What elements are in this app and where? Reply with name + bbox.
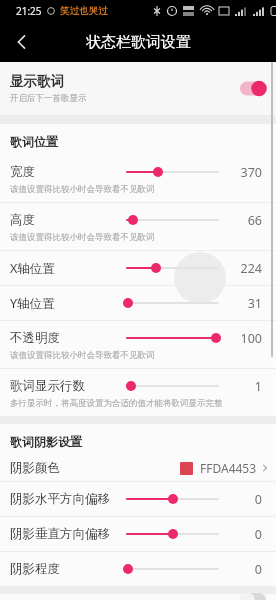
button[interactable]: 不透明度 (0, 321, 276, 368)
staticText: 笑过也哭过 (60, 5, 108, 17)
staticText: 21:25 (16, 4, 42, 18)
staticText: 该值设置得比较小时会导致看不见歌词 (10, 184, 155, 195)
staticText: X轴位置 (10, 260, 55, 277)
button[interactable]: 宽度 (0, 155, 276, 202)
button[interactable]: 阴影水平方向偏移 (0, 482, 276, 516)
staticText: 高度 (10, 212, 35, 228)
staticText: 阴影颜色 (10, 460, 60, 476)
button[interactable]: X轴位置 (0, 251, 276, 285)
staticText: 1 (254, 378, 262, 395)
staticText: 0 (254, 561, 262, 578)
staticText: 该值设置得比较小时会导致看不见歌词 (10, 232, 155, 243)
button[interactable]: Y轴位置 (0, 286, 276, 320)
staticText: 开启后下一首歌显示 (10, 93, 87, 104)
staticText: 歌词位置 (10, 134, 58, 149)
staticText: 阴影水平方向偏移 (10, 491, 110, 507)
button[interactable]: 阴影颜色 (0, 455, 276, 481)
staticText: 31 (247, 295, 262, 312)
staticText: 显示歌词 (10, 73, 64, 90)
staticText: Y轴位置 (10, 295, 55, 312)
button[interactable]: 显示歌词 (0, 62, 276, 115)
button[interactable]: 阴影程度 (0, 552, 276, 586)
staticText: 宽度 (10, 164, 35, 180)
staticText: 不透明度 (10, 330, 60, 346)
button[interactable]: 高度 (0, 203, 276, 250)
staticText: 0 (254, 491, 262, 508)
staticText: 歌词显示行数 (10, 378, 85, 394)
staticText: FFDA4453 (200, 460, 257, 476)
staticText: 阴影程度 (10, 561, 60, 577)
button[interactable]: 阴影垂直方向偏移 (0, 517, 276, 551)
staticText: 歌词阴影设置 (10, 434, 82, 449)
button[interactable]: 歌词显示行数 (0, 369, 276, 416)
staticText: 0 (254, 526, 262, 543)
staticText: 状态栏歌词设置 (86, 33, 191, 52)
staticText: 66 (247, 212, 262, 229)
staticText: 阴影垂直方向偏移 (10, 526, 110, 542)
staticText: 370 (240, 164, 262, 181)
staticText: 多行显示时，将高度设置为合适的值才能将歌词显示完整 (10, 398, 223, 409)
staticText: 224 (240, 260, 262, 277)
staticText: 该值设置得比较小时会导致看不见歌词 (10, 350, 155, 361)
button[interactable]: Back (4, 24, 40, 60)
staticText: 100 (240, 330, 262, 347)
